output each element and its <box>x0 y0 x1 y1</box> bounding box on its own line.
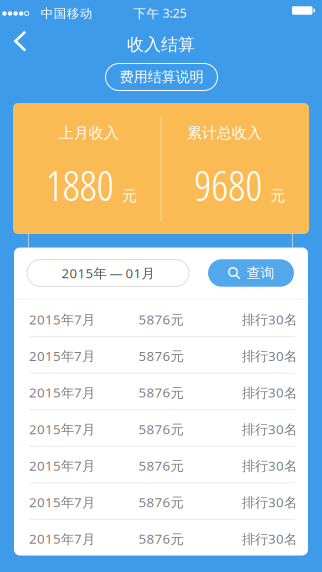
staticText: 2015年7月 <box>29 310 95 328</box>
staticText: 1880 <box>46 157 114 213</box>
button[interactable]: 2015年7月 <box>14 482 308 519</box>
staticText: 2015年7月 <box>29 530 95 548</box>
staticText: 排行30名 <box>242 383 297 401</box>
staticText: 2015年7月 <box>29 456 95 475</box>
staticText: 元 <box>270 187 285 205</box>
button[interactable]: 查询 <box>208 259 294 287</box>
staticText: 上月收入 <box>59 124 119 142</box>
staticText: 排行30名 <box>242 347 297 365</box>
staticText: 中国移动 <box>41 6 93 21</box>
staticText: 累计总收入 <box>187 124 262 142</box>
button[interactable]: Back <box>0 23 36 59</box>
button[interactable]: 2015年7月 <box>14 519 308 555</box>
staticText: 排行30名 <box>242 420 297 438</box>
staticText: 下午 3:25 <box>133 4 186 21</box>
button[interactable]: 2015年7月 <box>14 409 308 446</box>
staticText: 排行30名 <box>242 493 297 511</box>
button[interactable]: 2015年 — 01月 <box>27 259 189 286</box>
staticText: 收入结算 <box>127 34 195 55</box>
staticText: 2015年7月 <box>29 493 95 511</box>
staticText: 5876元 <box>138 383 183 401</box>
staticText: 2015年7月 <box>29 347 95 365</box>
staticText: 排行30名 <box>242 310 297 328</box>
staticText: 5876元 <box>138 347 183 365</box>
staticText: 9680 <box>194 157 262 213</box>
staticText: 排行30名 <box>242 530 297 548</box>
staticText: 2015年7月 <box>29 420 95 438</box>
staticText: 元 <box>122 187 137 205</box>
staticText: 2015年7月 <box>29 383 95 401</box>
button[interactable]: 2015年7月 <box>14 373 308 409</box>
button[interactable]: 2015年7月 <box>14 446 308 482</box>
button[interactable]: 2015年7月 <box>14 299 308 336</box>
staticText: 费用结算说明 <box>119 68 203 86</box>
staticText: 5876元 <box>138 493 183 511</box>
button[interactable]: 费用结算说明 <box>105 63 217 90</box>
staticText: 查询 <box>246 264 274 282</box>
staticText: 5876元 <box>138 530 183 548</box>
staticText: 2015年 — 01月 <box>61 264 154 282</box>
staticText: 5876元 <box>138 456 183 475</box>
button[interactable]: 2015年7月 <box>14 336 308 373</box>
staticText: 5876元 <box>138 420 183 438</box>
staticText: 排行30名 <box>242 456 297 475</box>
staticText: 5876元 <box>138 310 183 328</box>
